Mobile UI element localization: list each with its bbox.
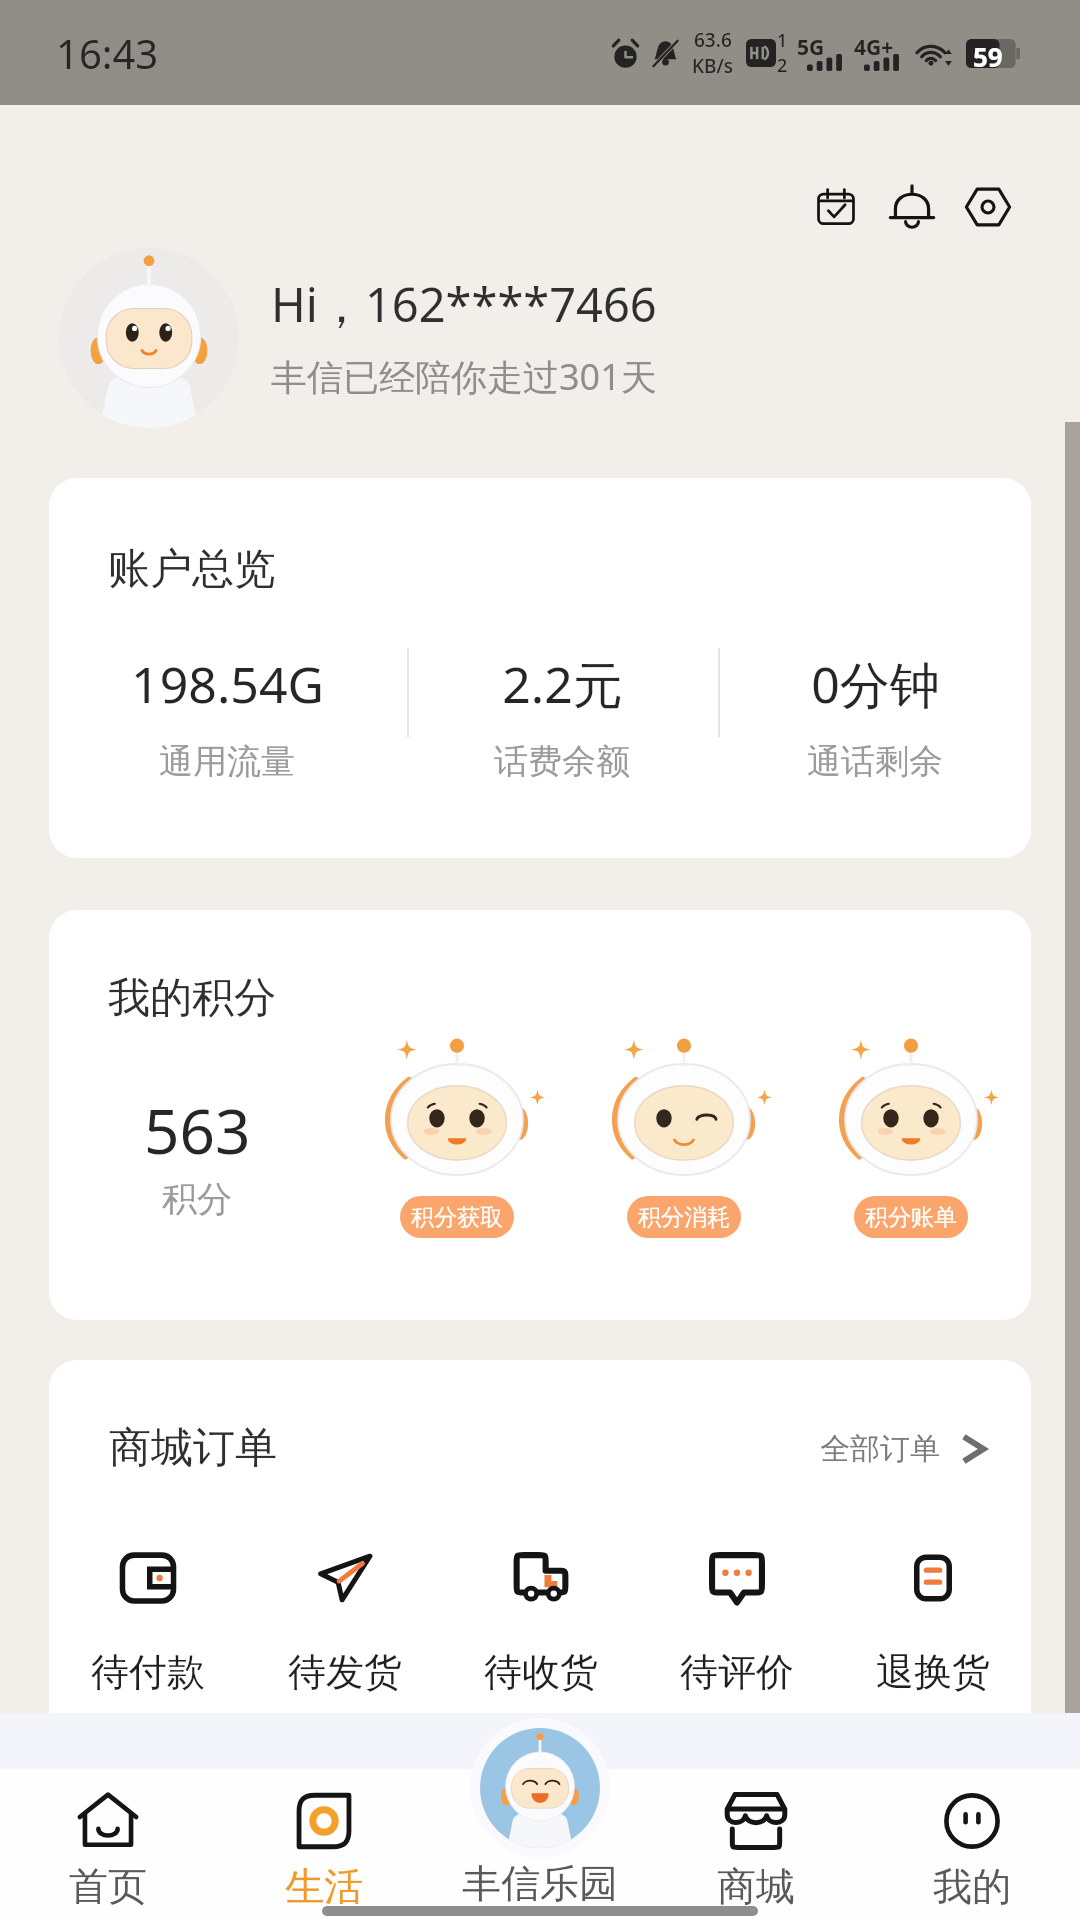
staticText: 待评价	[680, 1648, 794, 1696]
button[interactable]: 待付款	[49, 1552, 246, 1696]
button[interactable]: Calendar	[798, 159, 874, 255]
button[interactable]: 我的	[864, 1713, 1080, 1920]
staticText: 1	[777, 28, 788, 53]
staticText: 商城	[717, 1862, 795, 1911]
button[interactable]: 积分获取	[370, 1029, 544, 1238]
staticText: 5G	[797, 33, 825, 62]
button[interactable]: 198.54G	[77, 650, 377, 783]
staticText: 首页	[69, 1862, 147, 1911]
staticText: 丰信已经陪你走过301天	[271, 352, 657, 401]
staticText: 生活	[285, 1862, 363, 1911]
staticText: 59	[973, 39, 1003, 68]
staticText: 63.6	[694, 27, 732, 53]
staticText: 0分钟	[811, 650, 940, 718]
button[interactable]: 2.2元	[412, 650, 712, 783]
staticText: 全部订单	[820, 1430, 940, 1468]
button[interactable]: 积分消耗	[597, 1029, 771, 1238]
staticText: 积分账单	[865, 1203, 957, 1232]
staticText: 通用流量	[159, 740, 295, 783]
button[interactable]: 首页	[0, 1713, 216, 1920]
button[interactable]: Settings	[950, 159, 1026, 255]
staticText: 563	[144, 1088, 251, 1172]
button[interactable]: 待发货	[246, 1552, 443, 1696]
staticText: 待发货	[288, 1648, 402, 1696]
staticText: Hi，162****7466	[271, 272, 657, 336]
staticText: 丰信乐园	[462, 1859, 618, 1908]
button[interactable]: 待收货	[443, 1552, 639, 1696]
button[interactable]: 商城	[648, 1713, 864, 1920]
staticText: 待付款	[91, 1648, 205, 1696]
staticText: 通话剩余	[807, 740, 943, 783]
button[interactable]: 退换货	[835, 1552, 1031, 1696]
staticText: KB/s	[692, 53, 733, 79]
staticText: 2	[777, 53, 788, 78]
button[interactable]: 积分账单	[824, 1029, 998, 1238]
staticText: 账户总览	[108, 543, 276, 596]
button[interactable]: 丰信乐园	[432, 1713, 648, 1920]
staticText: 退换货	[876, 1648, 990, 1696]
button[interactable]: 待评价	[639, 1552, 835, 1696]
staticText: 16:43	[56, 26, 159, 80]
staticText: 积分	[162, 1177, 232, 1221]
staticText: 待收货	[484, 1648, 598, 1696]
staticText: 积分消耗	[638, 1203, 730, 1232]
staticText: 我的积分	[108, 972, 276, 1025]
staticText: 积分获取	[411, 1203, 503, 1232]
button[interactable]: Notifications	[874, 159, 950, 255]
staticText: 我的	[933, 1862, 1011, 1911]
button[interactable]: 生活	[216, 1713, 432, 1920]
staticText: 198.54G	[131, 650, 324, 718]
staticText: 4G+	[854, 33, 894, 62]
staticText: 2.2元	[502, 650, 623, 718]
button[interactable]: Hi，162****7466	[59, 248, 657, 428]
button[interactable]: 全部订单	[820, 1430, 986, 1468]
staticText: 商城订单	[109, 1422, 277, 1475]
staticText: 话费余额	[494, 740, 630, 783]
button[interactable]: 0分钟	[725, 650, 1025, 783]
